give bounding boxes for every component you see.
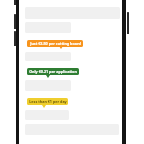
staticText: Less than €1 per day — [29, 99, 67, 104]
staticText: Only €0.21 per application — [29, 69, 77, 74]
staticText: Just €3.50 per cutting board — [30, 41, 81, 46]
button[interactable]: Less than €1 per day — [27, 98, 68, 105]
button[interactable]: Just €3.50 per cutting board — [27, 40, 83, 47]
button[interactable]: Only €0.21 per application — [27, 68, 79, 75]
